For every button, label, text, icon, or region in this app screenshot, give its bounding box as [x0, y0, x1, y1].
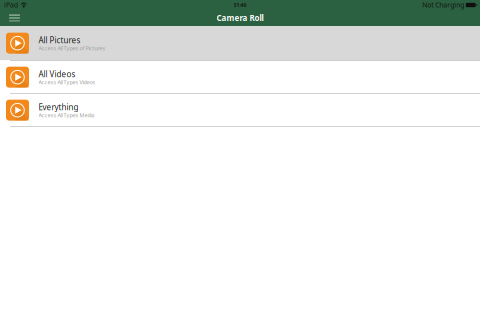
staticText: iPad — [4, 1, 18, 9]
staticText: Access All Types Videos — [38, 79, 95, 86]
button[interactable]: All Videos — [0, 61, 480, 93]
staticText: Camera Roll — [216, 13, 263, 23]
staticText: Access All Types of Pictures — [38, 45, 105, 52]
button[interactable]: Menu — [4, 10, 25, 26]
staticText: 01:46 — [233, 1, 246, 9]
button[interactable]: All Pictures — [0, 26, 480, 60]
staticText: All Videos — [38, 69, 75, 79]
staticText: Everything — [38, 102, 78, 112]
staticText: All Pictures — [38, 35, 80, 45]
staticText: Access All Types Media — [38, 112, 94, 119]
button[interactable]: Everything — [0, 94, 480, 126]
staticText: Not Charging — [422, 1, 464, 9]
